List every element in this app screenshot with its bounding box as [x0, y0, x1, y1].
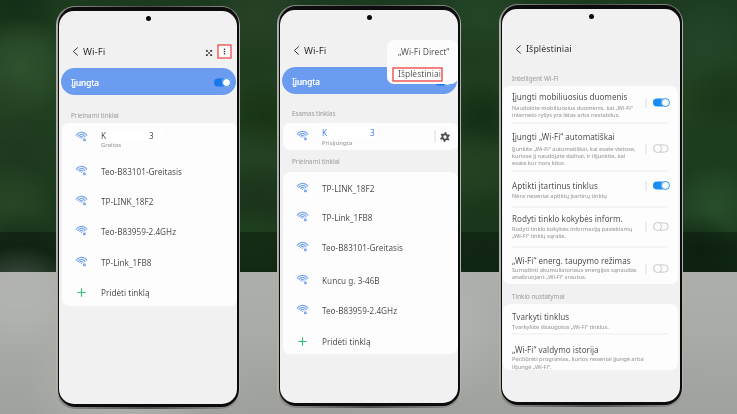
staticText: „Wi-Fi“ energ. taupymo režimas: [512, 255, 631, 266]
button[interactable]: Tvarkyti tinklus: [503, 304, 678, 335]
staticText: Wi-Fi: [83, 45, 106, 58]
staticText: Įjungti mobiliuosius duomenis: [512, 91, 628, 102]
staticText: Peržiūrėti programas, kurios neseniai įj…: [512, 355, 644, 363]
button[interactable]: More options: [218, 45, 231, 58]
button[interactable]: Pridėti tinklą: [283, 328, 458, 354]
button[interactable]: Teo-B83101-Greitasis: [62, 156, 237, 186]
staticText: K: [101, 130, 107, 141]
button[interactable]: Įjungti „Wi-Fi“ automatiškai: [503, 124, 678, 172]
staticText: 3: [370, 127, 375, 138]
staticText: Įjungta: [292, 76, 320, 87]
button[interactable]: TP-LINK_18F2: [283, 173, 458, 203]
staticText: Naudokite mobiliuosius duomenis, kai „Wi…: [512, 104, 633, 112]
staticText: Kuncu g. 3-46B: [322, 275, 380, 286]
staticText: TP-LINK_18F2: [322, 183, 375, 194]
button[interactable]: Rodyti tinklo kokybės inform.: [503, 207, 678, 248]
button[interactable]: „Wi-Fi Direct“: [387, 40, 458, 62]
staticText: Teo-B83959-2.4GHz: [101, 226, 176, 237]
button[interactable]: Teo-B83101-Greitasis: [283, 232, 458, 262]
button[interactable]: TP-Link_1FB8: [62, 247, 237, 277]
staticText: Teo-B83959-2.4GHz: [322, 305, 397, 316]
staticText: išjungė „Wi-Fi“.: [512, 363, 552, 370]
staticText: analizuojant „Wi-Fi“ srautus.: [512, 273, 587, 281]
staticText: Teo-B83101-Greitasis: [101, 166, 182, 177]
staticText: K: [322, 127, 328, 138]
staticText: Teo-B83101-Greitasis: [322, 242, 403, 253]
staticText: Pridėti tinklą: [101, 287, 150, 298]
staticText: Įjunkite „Wi-Fi“ automatiškai, kai esate…: [512, 145, 636, 153]
button[interactable]: Teo-B83959-2.4GHz: [283, 295, 458, 325]
staticText: Įjungti „Wi-Fi“ automatiškai: [512, 131, 615, 142]
staticText: Greitas: [101, 141, 122, 149]
button[interactable]: Kuncu g. 3-46B: [283, 265, 458, 295]
staticText: Išplėstiniai: [526, 43, 572, 55]
button[interactable]: Back: [512, 43, 525, 56]
button[interactable]: K: [62, 123, 237, 156]
staticText: TP-LINK_18F2: [101, 196, 154, 207]
button[interactable]: TP-Link_1FB8: [283, 202, 458, 232]
button[interactable]: Pridėti tinklą: [62, 279, 237, 305]
staticText: esate kur nors kitur.: [512, 159, 565, 167]
staticText: Išplėstiniai: [398, 68, 441, 80]
staticText: kuriose jį naudojate dažnai, ir išjunkit…: [512, 152, 626, 160]
button[interactable]: „Wi-Fi“ energ. taupymo režimas: [503, 248, 678, 284]
staticText: Wi-Fi: [304, 44, 327, 57]
staticText: Nėra neseniai aptiktų įtartinų tinklų: [512, 192, 607, 200]
staticText: „Wi-Fi“ valdymo istorija: [512, 344, 599, 355]
staticText: Sumažinti akumuliatoriaus energijos sąna…: [512, 266, 637, 274]
button[interactable]: Teo-B83959-2.4GHz: [62, 216, 237, 246]
staticText: Prieinami tinklai: [292, 157, 340, 166]
staticText: Rodyti tinklo kokybės inform.: [512, 213, 623, 224]
staticText: Pridėti tinklą: [322, 336, 371, 347]
staticText: Tinklo nustatymai: [512, 292, 565, 301]
button[interactable]: Aptikti įtartinus tinklus: [503, 172, 678, 208]
button[interactable]: Back: [290, 44, 303, 57]
staticText: Intelligent Wi-Fi: [512, 74, 559, 83]
staticText: Tvarkyti tinklus: [512, 311, 570, 322]
button[interactable]: TP-LINK_18F2: [62, 186, 237, 216]
staticText: TP-Link_1FB8: [101, 257, 152, 268]
staticText: 3: [149, 130, 154, 141]
staticText: interneto ryšys yra lėtas arba nestabilu…: [512, 111, 620, 119]
staticText: „Wi-Fi“ tinklų sąraše.: [512, 232, 566, 240]
staticText: Prieinami tinklai: [71, 111, 119, 120]
staticText: TP-Link_1FB8: [322, 212, 373, 223]
staticText: Įjungta: [71, 77, 99, 88]
staticText: Tvarkykite išsaugotus „Wi-Fi“ tinklus.: [512, 323, 609, 331]
staticText: Prisijungta: [322, 139, 353, 147]
button[interactable]: Network settings: [439, 131, 450, 142]
button[interactable]: Įjungti mobiliuosius duomenis: [503, 86, 678, 124]
button[interactable]: „Wi-Fi“ valdymo istorija: [503, 335, 678, 370]
button[interactable]: K: [283, 123, 458, 150]
button[interactable]: Išplėstiniai: [393, 68, 442, 81]
staticText: Aptikti įtartinus tinklus: [512, 180, 598, 191]
staticText: „Wi-Fi Direct“: [398, 46, 450, 58]
button[interactable]: Įjungta: [282, 67, 457, 94]
button[interactable]: Įjungta: [61, 68, 236, 95]
staticText: Rodyti tinklo kokybės informaciją pasiek…: [512, 225, 633, 233]
button[interactable]: Back: [69, 45, 82, 58]
button[interactable]: Smart View: [203, 47, 214, 58]
staticText: Esamas tinklas: [292, 109, 336, 118]
